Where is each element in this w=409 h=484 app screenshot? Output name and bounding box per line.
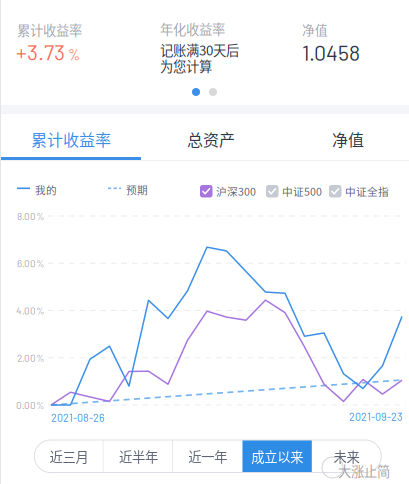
staticText: 大涨止简 (338, 461, 390, 480)
staticText: 沪深300 (216, 183, 256, 199)
staticText: 为您计算 (160, 56, 212, 75)
staticText: % (68, 46, 80, 63)
staticText: 2021-09-23 (349, 410, 402, 423)
button[interactable]: 近半年 (104, 440, 173, 472)
staticText: 2021-08-26 (51, 411, 104, 424)
button[interactable]: 中证500 (266, 183, 322, 199)
staticText: 0.00% (16, 399, 44, 411)
staticText: 1.0458 (302, 39, 360, 65)
staticText: 4.00% (16, 304, 44, 316)
staticText: 累计收益率 (17, 20, 82, 39)
button[interactable]: 近三月 (34, 440, 104, 472)
button[interactable]: 总资产 (141, 114, 281, 160)
staticText: 未来 (334, 447, 360, 466)
button[interactable]: 未来 (312, 440, 381, 472)
staticText: 净值 (302, 20, 328, 38)
button[interactable]: 累计收益率 (1, 114, 141, 160)
staticText: 我的 (35, 182, 57, 197)
staticText: 年化收益率 (160, 19, 225, 38)
staticText: 2.00% (17, 352, 44, 364)
button[interactable]: 沪深300 (200, 183, 256, 199)
button[interactable]: 近一年 (173, 440, 242, 472)
staticText: 近半年 (119, 447, 158, 466)
button[interactable]: 中证全指 (329, 183, 389, 199)
button[interactable]: 成立以来 (242, 440, 312, 472)
staticText: 净值 (332, 127, 364, 151)
staticText: 中证全指 (345, 183, 389, 199)
staticText: 8.00% (17, 210, 44, 222)
staticText: +3.73 (16, 39, 65, 65)
staticText: 累计收益率 (31, 127, 111, 151)
staticText: 近一年 (188, 447, 227, 466)
staticText: 中证500 (282, 183, 322, 199)
button[interactable]: 净值 (278, 114, 409, 160)
staticText: 记账满30天后 (160, 40, 239, 59)
staticText: 近三月 (49, 447, 88, 466)
staticText: 成立以来 (251, 447, 303, 466)
staticText: 预期 (126, 182, 148, 197)
staticText: 6.00% (17, 257, 44, 269)
staticText: 总资产 (187, 127, 235, 151)
